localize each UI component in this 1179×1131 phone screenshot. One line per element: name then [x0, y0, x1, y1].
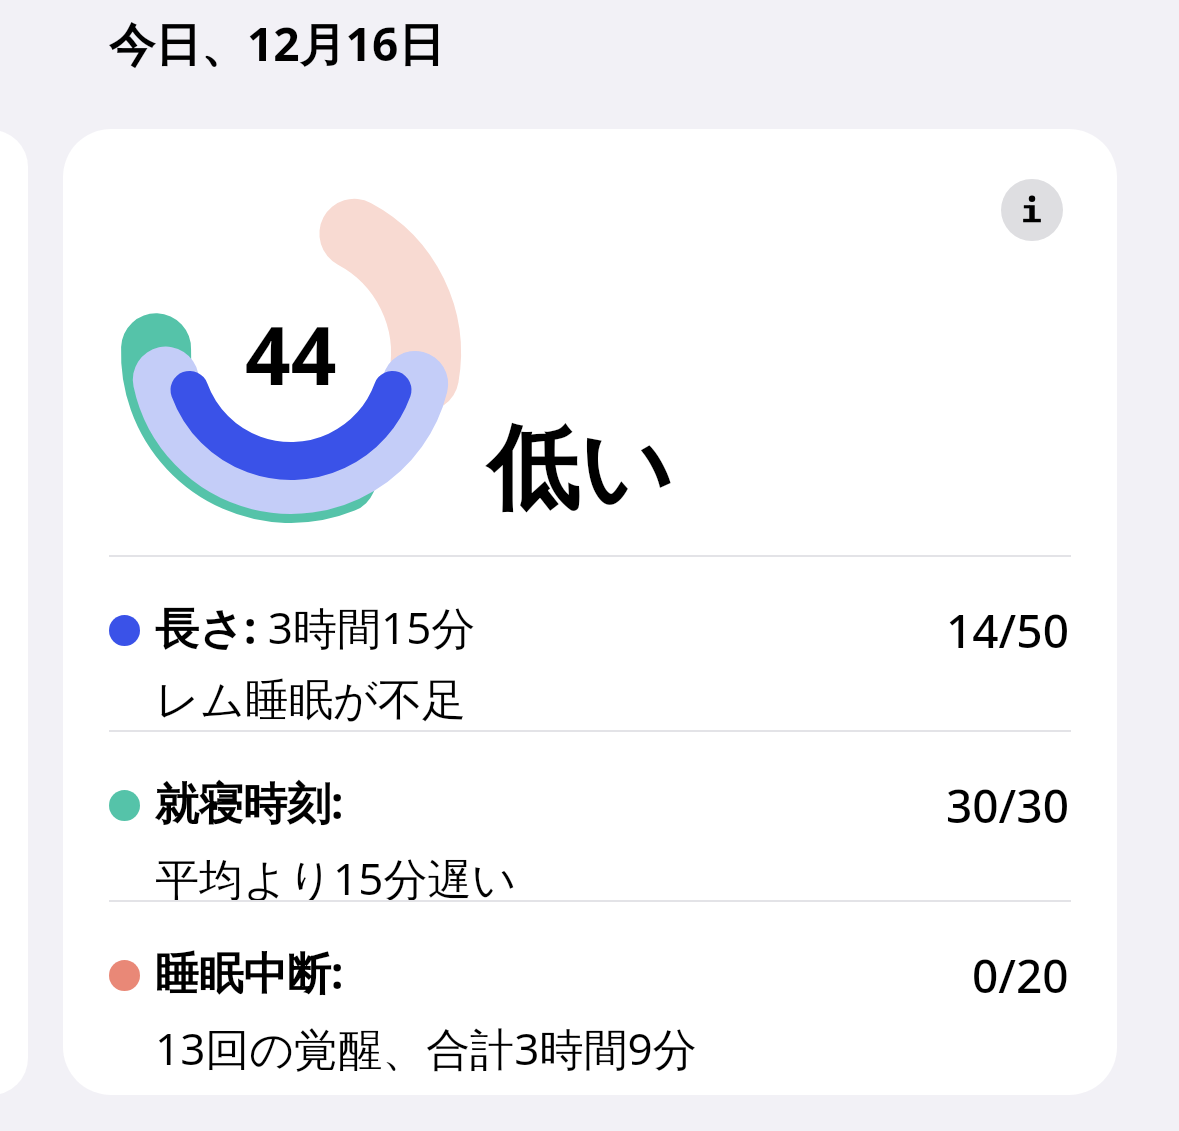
staticText: 13回の覚醒、合計3時間9分 — [155, 1018, 697, 1078]
staticText: 平均より15分遅い — [155, 848, 517, 908]
button[interactable]: 長さ: 3時間15分 — [63, 555, 1117, 728]
button[interactable]: 睡眠中断: — [63, 900, 1117, 1078]
staticText: 低い — [487, 411, 674, 527]
button[interactable]: 詳細情報 — [1001, 179, 1063, 241]
staticText: 44 — [245, 299, 337, 408]
staticText: 30/30 — [946, 774, 1069, 837]
button[interactable]: 44 — [63, 129, 1117, 1095]
staticText: 睡眠中断: — [155, 942, 344, 1002]
button[interactable]: 就寝時刻: — [63, 730, 1117, 908]
staticText: 今日、12月16日 — [109, 12, 445, 75]
staticText: 長さ: 3時間15分 — [155, 597, 476, 657]
staticText: レム睡眠が不足 — [155, 673, 467, 728]
staticText: 14/50 — [946, 599, 1069, 662]
staticText: 0/20 — [972, 944, 1069, 1007]
staticText: 就寝時刻: — [155, 772, 344, 832]
